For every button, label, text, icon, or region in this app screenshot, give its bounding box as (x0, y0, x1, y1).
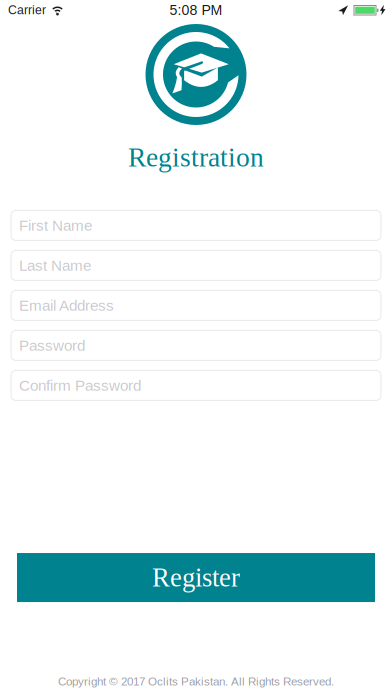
button[interactable]: Confirm Password (11, 370, 381, 400)
staticText: Registration (128, 142, 264, 172)
button[interactable]: Password (11, 330, 381, 360)
staticText: Last Name (19, 257, 91, 274)
button[interactable]: First Name (11, 210, 381, 240)
staticText: Password (19, 337, 85, 354)
staticText: Email Address (19, 297, 114, 314)
button[interactable]: Last Name (11, 250, 381, 280)
staticText: Copyright © 2017 Oclits Pakistan. All Ri… (58, 675, 334, 688)
staticText: Confirm Password (19, 377, 141, 394)
button[interactable]: Email Address (11, 290, 381, 320)
staticText: Register (152, 563, 240, 592)
button[interactable]: Register (17, 553, 375, 602)
staticText: 5:08 PM (169, 2, 222, 18)
staticText: Carrier (8, 3, 46, 17)
staticText: First Name (19, 217, 92, 234)
